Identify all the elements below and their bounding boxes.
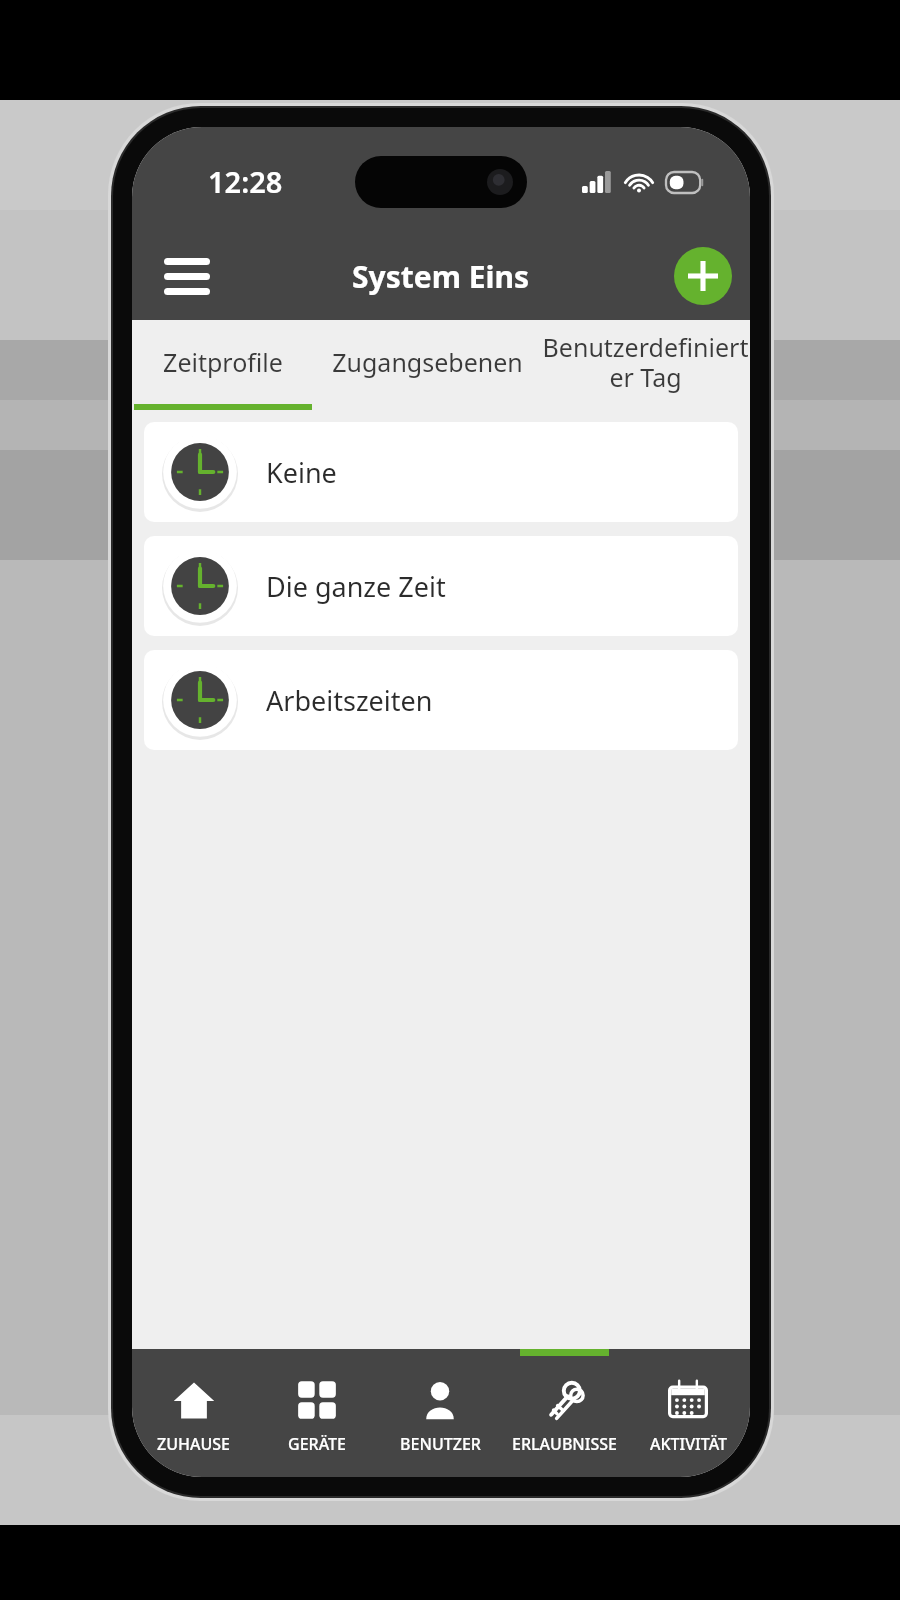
staticText: Arbeitszeiten — [266, 682, 433, 719]
button[interactable]: GERÄTE — [255, 1349, 378, 1477]
button[interactable]: BENUTZER — [378, 1349, 502, 1477]
staticText: Zeitprofile — [163, 345, 283, 379]
button[interactable]: AKTIVITÄT — [626, 1349, 750, 1477]
staticText: 12:28 — [208, 162, 283, 201]
button[interactable]: Die ganze Zeit — [144, 536, 738, 636]
button[interactable]: Add — [674, 247, 732, 305]
staticText: AKTIVITÄT — [650, 1433, 727, 1455]
staticText: System Eins — [352, 256, 530, 297]
button[interactable]: Keine — [144, 422, 738, 522]
staticText: Keine — [266, 454, 337, 491]
button[interactable]: Arbeitszeiten — [144, 650, 738, 750]
button[interactable]: ZUHAUSE — [132, 1349, 255, 1477]
button[interactable]: Menu — [156, 245, 218, 307]
staticText: ZUHAUSE — [157, 1433, 230, 1455]
button[interactable]: Zugangsebenen — [314, 320, 541, 404]
staticText: Die ganze Zeit — [266, 568, 446, 605]
button[interactable]: Benutzerdefinierter Tag — [541, 320, 750, 404]
button[interactable]: ERLAUBNISSE — [502, 1349, 626, 1477]
staticText: Zugangsebenen — [332, 345, 523, 379]
staticText: GERÄTE — [288, 1433, 346, 1455]
staticText: BENUTZER — [400, 1433, 481, 1455]
staticText: Benutzerdefinierter Tag — [541, 330, 750, 395]
staticText: ERLAUBNISSE — [512, 1433, 617, 1455]
button[interactable]: Zeitprofile — [132, 320, 314, 404]
